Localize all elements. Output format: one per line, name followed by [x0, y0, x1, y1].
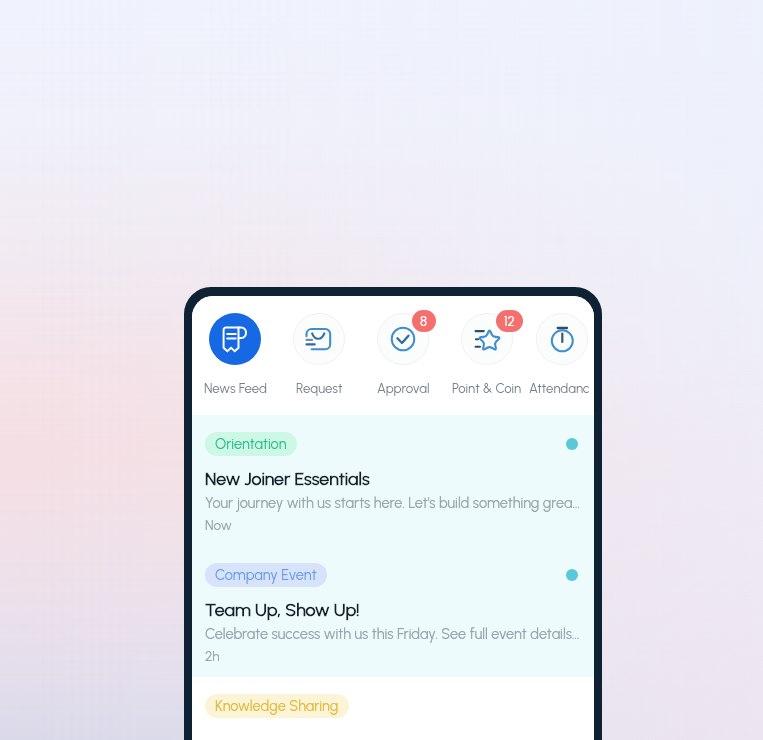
- staticText: 2h: [205, 648, 220, 664]
- staticText: Celebrate success with us this Friday. S…: [205, 625, 581, 642]
- staticText: Point & Coin: [452, 380, 522, 396]
- staticText: News Feed: [204, 380, 267, 396]
- button[interactable]: Knowledge Sharing: [192, 677, 594, 740]
- button[interactable]: Request: [277, 296, 361, 401]
- button[interactable]: Orientation: [192, 415, 594, 546]
- staticText: 8: [420, 313, 428, 329]
- button[interactable]: Attendance: [529, 296, 594, 401]
- button[interactable]: Approval: [361, 296, 445, 401]
- staticText: Knowledge Sharing: [215, 697, 339, 714]
- staticText: Attendance: [529, 380, 594, 396]
- staticText: Approval: [377, 380, 430, 396]
- staticText: Team Up, Show Up!: [205, 599, 360, 620]
- staticText: 12: [504, 313, 515, 329]
- button[interactable]: Point and Coin: [445, 296, 529, 401]
- staticText: Company Event: [215, 566, 317, 583]
- staticText: Request: [296, 380, 343, 396]
- staticText: New Joiner Essentials: [205, 468, 370, 489]
- staticText: Now: [205, 517, 232, 533]
- button[interactable]: News Feed: [193, 296, 277, 401]
- staticText: Orientation: [215, 435, 287, 452]
- button[interactable]: Company Event: [192, 546, 594, 677]
- staticText: Your journey with us starts here. Let's …: [205, 494, 580, 511]
